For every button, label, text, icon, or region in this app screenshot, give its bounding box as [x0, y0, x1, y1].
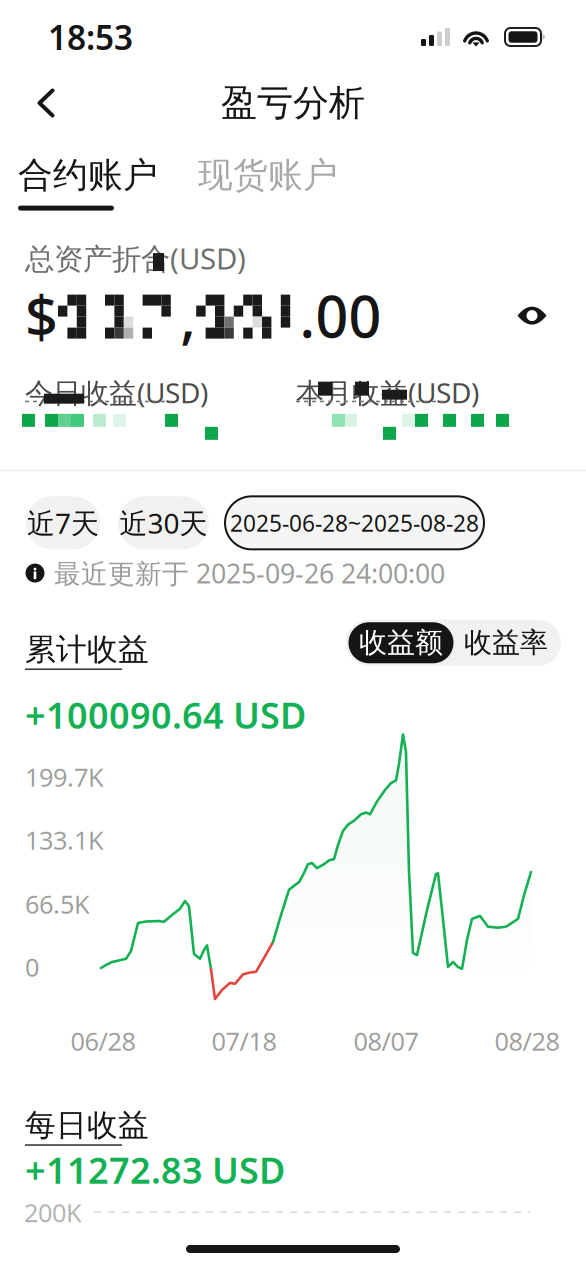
- staticText: +11272.83 USD: [25, 1146, 285, 1194]
- button[interactable]: 现货账户: [198, 154, 338, 211]
- staticText: 近7天: [27, 504, 99, 541]
- staticText: ,: [180, 277, 196, 354]
- staticText: 累计收益: [25, 631, 149, 668]
- staticText: 近30天: [119, 504, 207, 541]
- button[interactable]: 合约账户: [18, 154, 158, 211]
- staticText: 06/28: [70, 1024, 135, 1058]
- button[interactable]: 2025-06-28~2025-08-28: [225, 496, 484, 549]
- staticText: 总资产折合(USD): [25, 239, 246, 278]
- staticText: 每日收益: [25, 1107, 149, 1144]
- staticText: 收益额: [359, 626, 443, 660]
- button[interactable]: 近7天: [26, 496, 100, 549]
- button[interactable]: 近30天: [118, 496, 209, 549]
- staticText: +100090.64 USD: [25, 691, 306, 739]
- staticText: 盈亏分析: [221, 81, 365, 125]
- staticText: 133.1K: [25, 823, 104, 857]
- staticText: 收益率: [464, 626, 548, 660]
- staticText: 07/18: [211, 1024, 276, 1058]
- staticText: 最近更新于 2025-09-26 24:00:00: [54, 555, 445, 591]
- staticText: .00: [300, 277, 382, 354]
- staticText: 今日收益(USD): [25, 374, 208, 411]
- staticText: 08/07: [353, 1024, 418, 1058]
- staticText: 199.7K: [25, 760, 104, 794]
- staticText: 08/28: [494, 1024, 559, 1058]
- button[interactable]: Back: [18, 75, 74, 131]
- button[interactable]: Hide balance: [510, 294, 554, 338]
- staticText: 0: [25, 950, 39, 984]
- staticText: $: [25, 277, 58, 354]
- staticText: 66.5K: [25, 887, 90, 921]
- staticText: 2025-06-28~2025-08-28: [230, 508, 479, 538]
- button[interactable]: 收益额: [348, 622, 453, 663]
- staticText: 本月收益(USD): [296, 374, 479, 411]
- button[interactable]: 收益率: [453, 622, 558, 663]
- staticText: 合约账户: [18, 154, 158, 197]
- staticText: 现货账户: [198, 154, 338, 197]
- staticText: 200K: [24, 1196, 82, 1229]
- staticText: 18:53: [48, 15, 133, 59]
